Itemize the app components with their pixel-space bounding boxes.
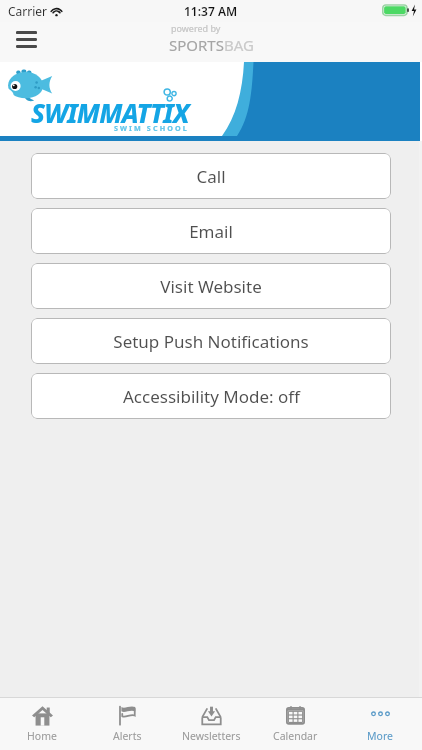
button[interactable]: Setup Push Notifications: [31, 318, 391, 364]
staticText: powered by: [171, 22, 221, 34]
staticText: Call: [196, 165, 226, 188]
staticText: Calendar: [273, 729, 318, 743]
staticText: BAG: [224, 35, 254, 55]
staticText: 11:37 AM: [184, 3, 238, 19]
button[interactable]: Visit Website: [31, 263, 391, 309]
staticText: SWIM SCHOOL: [114, 123, 189, 133]
staticText: Newsletters: [182, 729, 241, 743]
button[interactable]: More: [338, 698, 422, 750]
button[interactable]: Email: [31, 208, 391, 254]
button[interactable]: Open navigation menu: [6, 23, 46, 55]
staticText: Home: [27, 729, 57, 743]
button[interactable]: Home: [0, 698, 84, 750]
button[interactable]: Newsletters: [169, 698, 253, 750]
staticText: Visit Website: [160, 275, 262, 298]
button[interactable]: Accessibility Mode: off: [31, 373, 391, 419]
button[interactable]: Alerts: [85, 698, 169, 750]
button[interactable]: Calendar: [253, 698, 337, 750]
staticText: Email: [189, 220, 233, 243]
staticText: Accessibility Mode: off: [123, 385, 300, 408]
staticText: More: [367, 729, 393, 743]
staticText: SWIMMATTIX: [31, 95, 189, 130]
staticText: Carrier: [8, 3, 48, 19]
staticText: SPORTS: [169, 35, 224, 55]
button[interactable]: Call: [31, 153, 391, 199]
staticText: Setup Push Notifications: [113, 330, 309, 353]
staticText: Alerts: [113, 729, 142, 743]
